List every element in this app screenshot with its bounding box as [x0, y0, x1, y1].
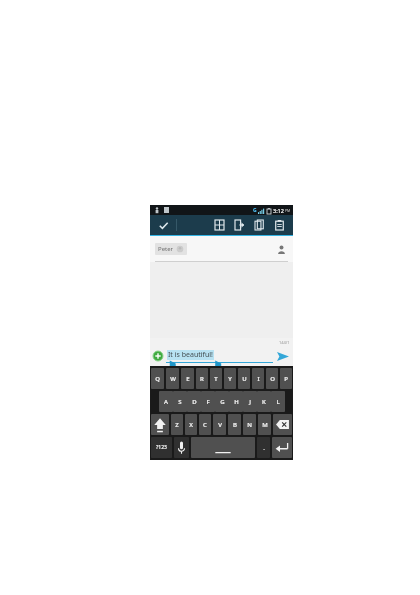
staticText: 144/1 [279, 340, 290, 345]
button[interactable]: D [187, 391, 201, 412]
button[interactable]: X [185, 414, 197, 435]
button[interactable]: J [243, 391, 257, 412]
button[interactable]: Z [171, 414, 183, 435]
button[interactable]: H [229, 391, 243, 412]
button[interactable]: Shift [151, 414, 169, 435]
button[interactable]: Attach [150, 348, 166, 364]
button[interactable]: Add contact [274, 242, 288, 256]
staticText: A [164, 398, 168, 406]
button[interactable]: W [166, 368, 179, 389]
staticText: F [206, 398, 210, 406]
button[interactable]: Paste [271, 215, 287, 235]
staticText: V [218, 421, 222, 429]
button[interactable]: Space [191, 437, 255, 458]
button[interactable]: Peter [155, 243, 187, 255]
button[interactable]: G [215, 391, 229, 412]
staticText: G [253, 207, 257, 214]
staticText: Z [175, 421, 179, 429]
staticText: E [186, 375, 190, 383]
staticText: H [234, 398, 239, 406]
staticText: U [242, 375, 247, 383]
button[interactable]: C [199, 414, 211, 435]
button[interactable]: . [257, 437, 270, 458]
staticText: . [263, 444, 265, 452]
button[interactable]: O [266, 368, 278, 389]
button[interactable]: B [228, 414, 241, 435]
button[interactable]: T [210, 368, 222, 389]
button[interactable]: F [201, 391, 215, 412]
button[interactable]: P [280, 368, 292, 389]
staticText: D [192, 398, 197, 406]
staticText: I [257, 375, 260, 383]
button[interactable]: R [196, 368, 208, 389]
staticText: 3:12 [273, 207, 284, 214]
button[interactable]: M [258, 414, 271, 435]
button[interactable]: It is beautiful! [167, 350, 214, 360]
button[interactable]: Done [150, 215, 176, 235]
staticText: It is beautiful! [168, 350, 213, 360]
staticText: K [262, 398, 266, 406]
button[interactable]: Enter [272, 437, 292, 458]
staticText: B [233, 421, 237, 429]
button[interactable]: A [159, 391, 173, 412]
staticText: Peter [158, 245, 174, 253]
button[interactable]: S [173, 391, 187, 412]
button[interactable]: Grid [211, 215, 227, 235]
button[interactable]: Y [224, 368, 236, 389]
staticText: C [203, 421, 207, 429]
button[interactable]: Copy [251, 215, 267, 235]
staticText: ?123 [156, 444, 167, 451]
button[interactable]: K [257, 391, 271, 412]
staticText: X [189, 421, 193, 429]
button[interactable]: Voice input [174, 437, 189, 458]
staticText: J [249, 398, 251, 406]
staticText: S [178, 398, 182, 406]
staticText: R [200, 375, 204, 383]
button[interactable]: U [238, 368, 250, 389]
staticText: P [284, 375, 288, 383]
staticText: L [276, 398, 280, 406]
button[interactable]: L [271, 391, 285, 412]
staticText: G [220, 398, 225, 406]
button[interactable]: Q [151, 368, 164, 389]
staticText: O [270, 375, 275, 383]
staticText: Y [228, 375, 232, 383]
button[interactable]: E [181, 368, 194, 389]
button[interactable]: N [243, 414, 256, 435]
staticText: M [262, 421, 268, 429]
staticText: Q [155, 375, 160, 383]
button[interactable]: Send [273, 346, 293, 366]
button[interactable]: V [213, 414, 226, 435]
staticText: PM [285, 208, 291, 213]
button[interactable]: Backspace [273, 414, 292, 435]
button[interactable]: Insert [231, 215, 247, 235]
button[interactable]: I [252, 368, 264, 389]
staticText: W [170, 375, 176, 383]
staticText: T [214, 375, 218, 383]
button[interactable]: ?123 [151, 437, 172, 458]
staticText: N [247, 421, 252, 429]
